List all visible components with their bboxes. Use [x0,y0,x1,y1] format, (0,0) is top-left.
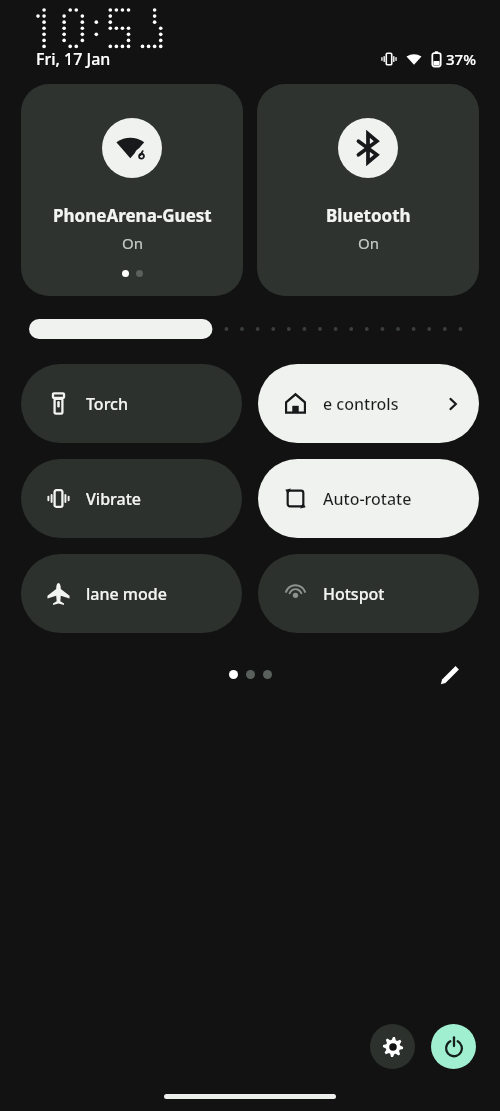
button[interactable]: Edit tiles [433,657,467,691]
button[interactable]: PhoneArena-Guest [21,84,243,296]
staticText: On [122,233,143,253]
button[interactable]: Settings [370,1024,415,1069]
staticText: lane mode [86,583,167,605]
staticText: Bluetooth [326,204,411,227]
staticText: On [358,233,379,253]
button[interactable]: lane mode [21,554,242,633]
button[interactable]: e controls [258,364,479,443]
button[interactable]: Bluetooth [257,84,479,296]
staticText: Auto-rotate [323,488,412,510]
staticText: Fri, 17 Jan [36,48,111,70]
button[interactable]: Auto-rotate [258,459,479,538]
staticText: e controls [323,393,399,415]
button[interactable]: Brightness [29,318,471,340]
staticText: Hotspot [323,583,385,605]
button[interactable]: Power [431,1024,476,1069]
button[interactable]: Vibrate [21,459,242,538]
button[interactable]: Hotspot [258,554,479,633]
staticText: Torch [86,393,128,415]
staticText: PhoneArena-Guest [53,204,212,227]
staticText: Vibrate [86,488,141,510]
button[interactable]: Torch [21,364,242,443]
staticText: 37% [446,49,476,69]
